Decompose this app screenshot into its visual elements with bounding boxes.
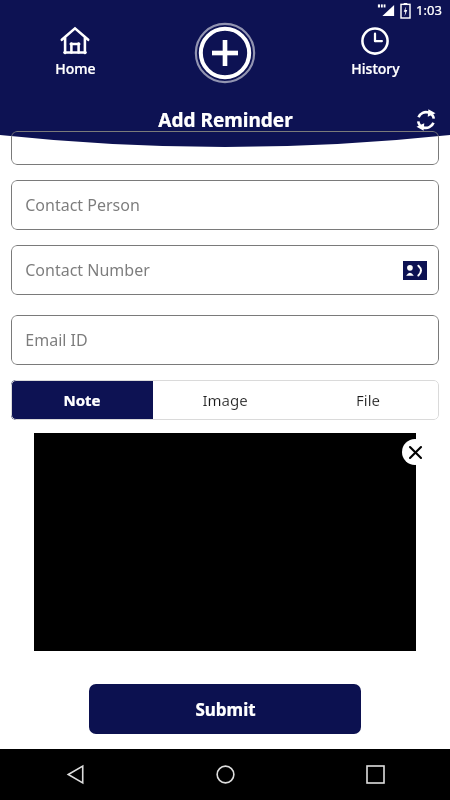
button[interactable]: Contact Number xyxy=(11,245,439,295)
staticText: Home xyxy=(55,59,96,78)
button[interactable]: Submit xyxy=(89,684,361,734)
button[interactable]: File xyxy=(296,380,439,420)
staticText: File xyxy=(356,390,380,410)
button[interactable]: Home xyxy=(0,22,150,78)
button[interactable] xyxy=(34,433,416,651)
staticText: History xyxy=(351,59,400,78)
button[interactable]: Close xyxy=(402,439,428,465)
button[interactable]: Home xyxy=(216,765,235,784)
staticText: Image xyxy=(202,390,248,410)
staticText: Contact Person xyxy=(25,194,140,216)
button[interactable]: History xyxy=(300,22,450,78)
staticText: Submit xyxy=(195,698,256,721)
staticText: Note xyxy=(63,390,101,410)
button[interactable]: Image xyxy=(153,380,296,420)
button[interactable]: Note xyxy=(11,380,153,420)
button[interactable]: Back xyxy=(66,765,85,784)
staticText: Contact Number xyxy=(25,259,150,281)
staticText: Add Reminder xyxy=(158,107,293,133)
button[interactable]: Email ID xyxy=(11,315,439,365)
staticText: Email ID xyxy=(25,329,88,351)
button[interactable]: Refresh xyxy=(414,108,438,132)
button[interactable] xyxy=(11,131,439,165)
button[interactable]: Contact Person xyxy=(11,180,439,230)
button[interactable]: Add xyxy=(194,22,256,84)
button[interactable]: Recent apps xyxy=(367,766,384,783)
staticText: 1:03 xyxy=(416,1,442,19)
